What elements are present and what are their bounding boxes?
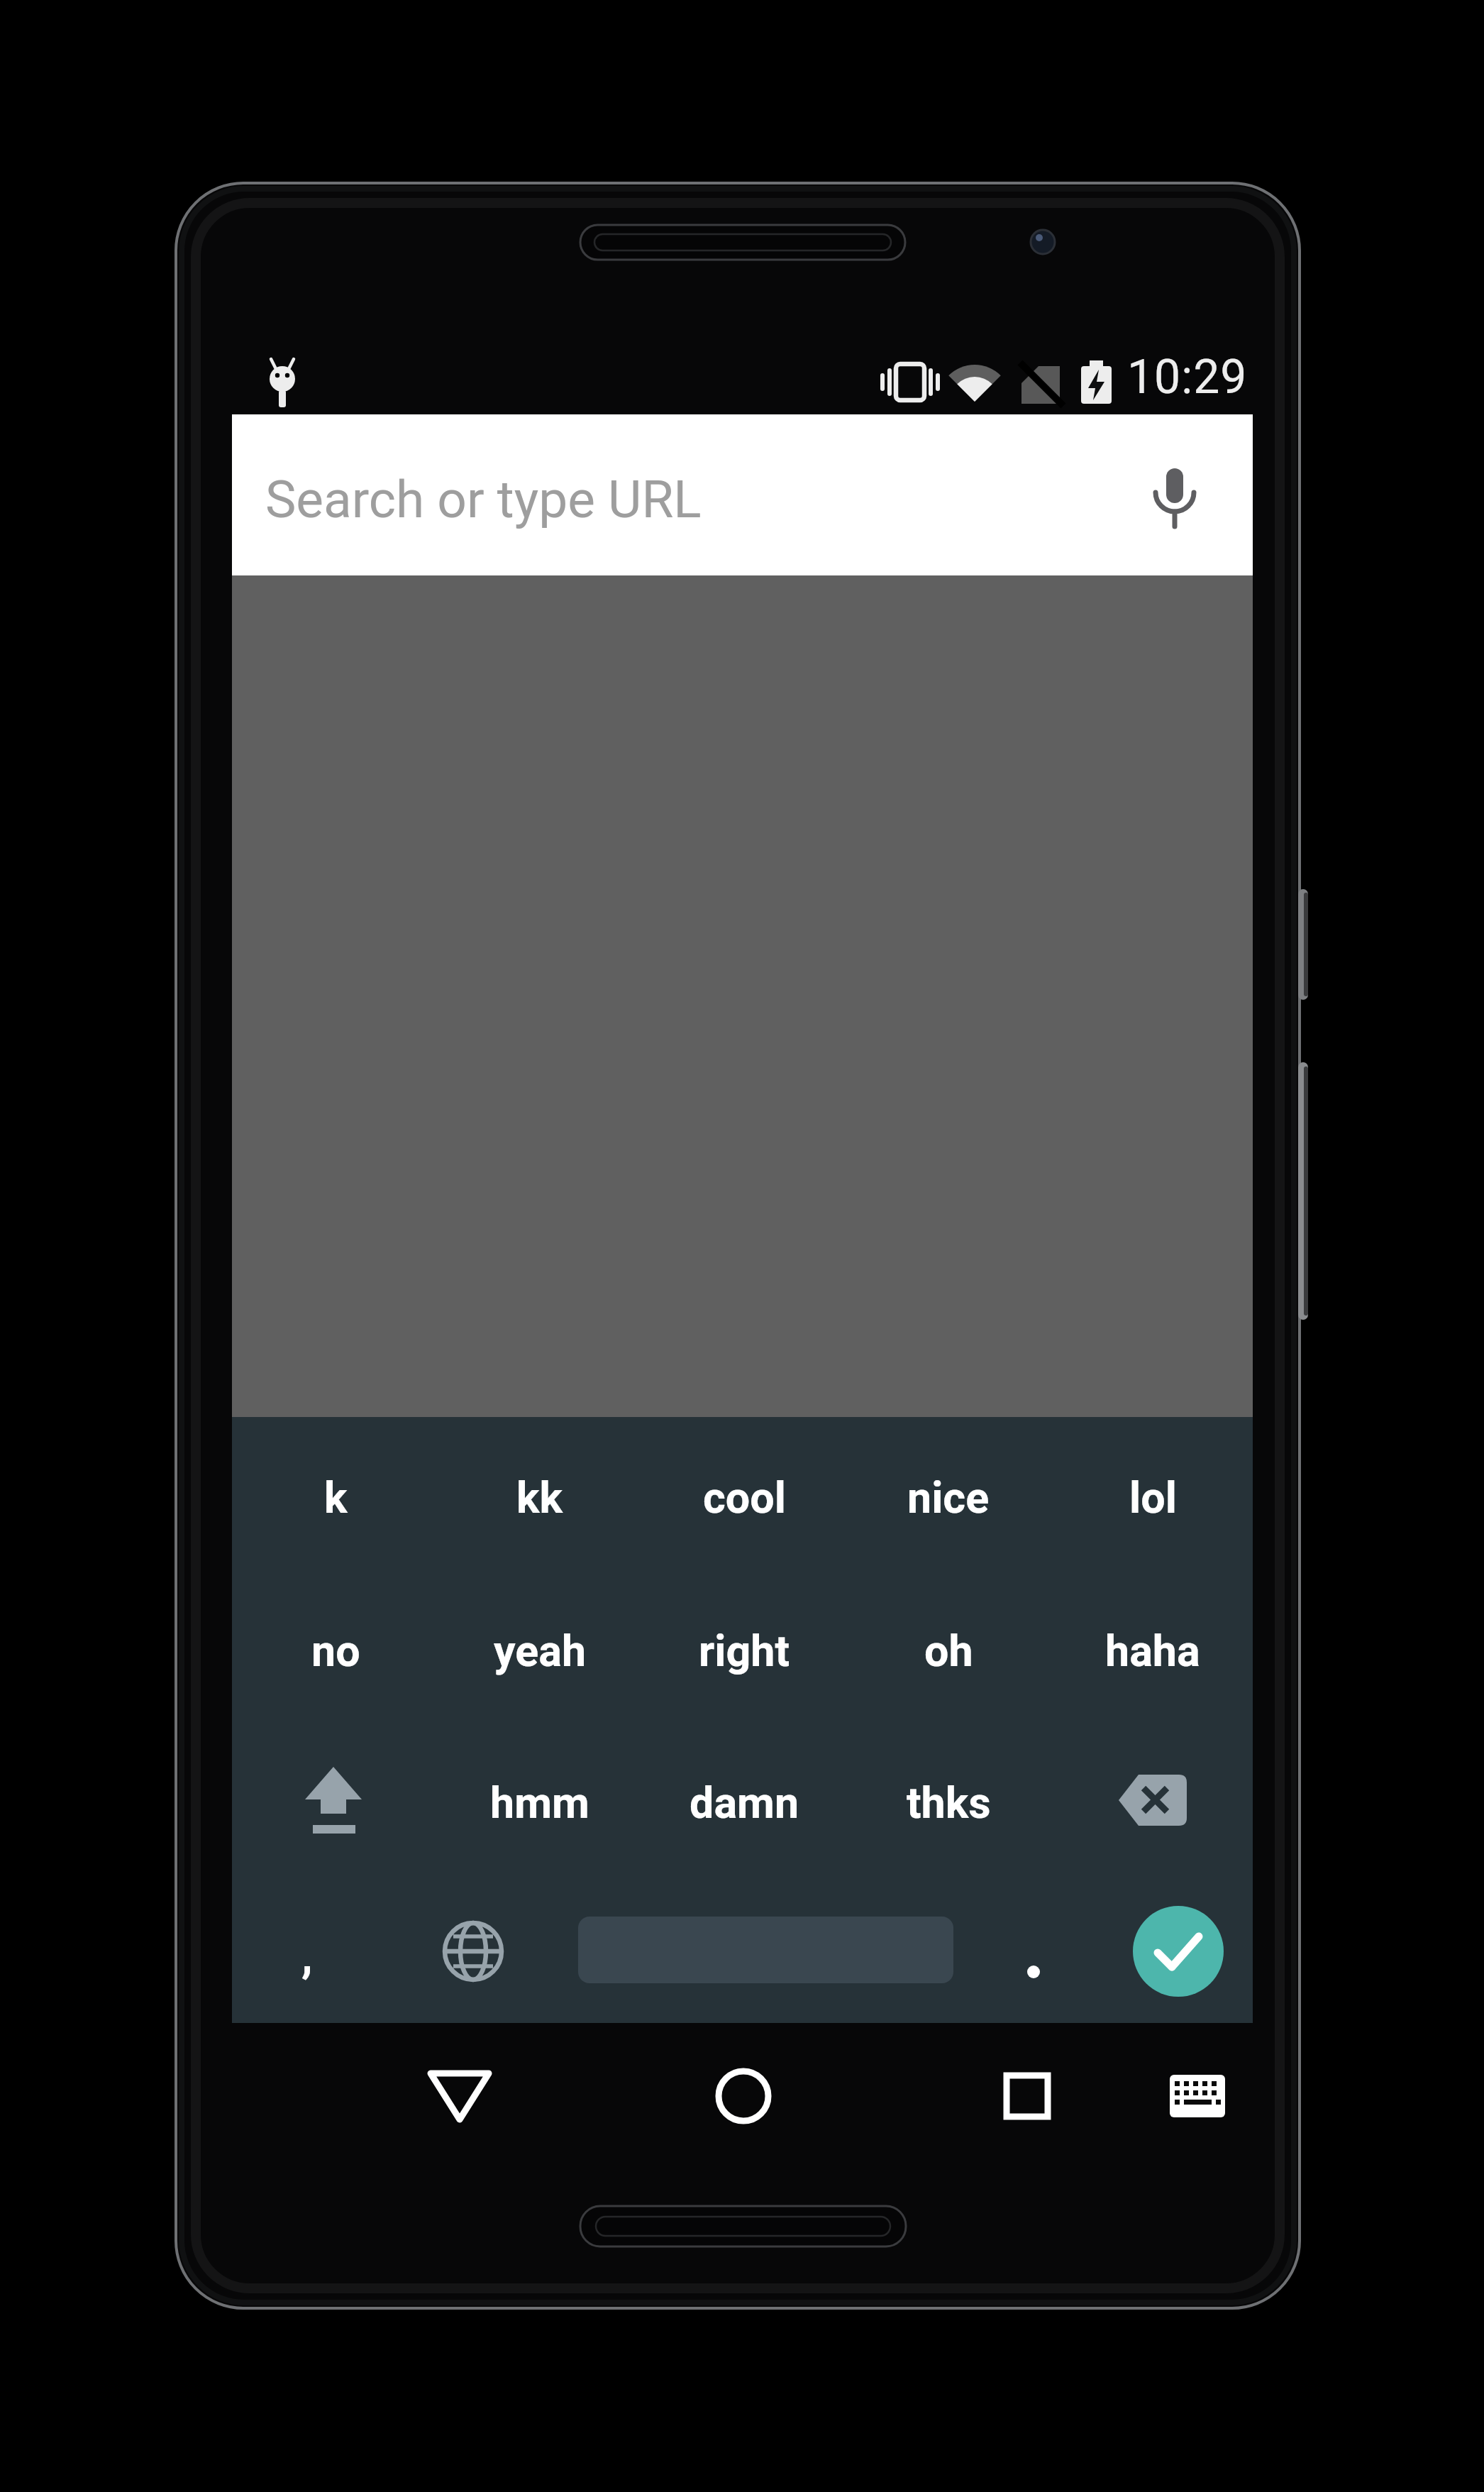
button[interactable] [262, 1743, 404, 1857]
staticText: damn [690, 1777, 799, 1828]
staticText: right [699, 1626, 790, 1676]
staticText: yeah [494, 1626, 587, 1676]
button[interactable]: hmm [441, 1746, 639, 1859]
button[interactable]: haha [1053, 1594, 1252, 1707]
staticText: haha [1105, 1626, 1200, 1676]
button[interactable] [1133, 1906, 1224, 1997]
button[interactable]: right [645, 1594, 843, 1707]
staticText: , [301, 1930, 313, 1983]
button[interactable]: k [236, 1440, 435, 1554]
staticText: 10:29 [1127, 350, 1248, 401]
staticText: nice [907, 1472, 990, 1523]
button[interactable] [396, 2032, 524, 2160]
button[interactable]: no [236, 1594, 435, 1707]
staticText: no [311, 1626, 360, 1676]
staticText: thks [907, 1777, 991, 1828]
button[interactable]: nice [849, 1440, 1048, 1554]
button[interactable]: cool [645, 1440, 843, 1554]
staticText: kk [516, 1472, 563, 1523]
button[interactable] [1081, 1743, 1223, 1856]
button[interactable]: kk [441, 1440, 639, 1554]
button[interactable] [963, 2032, 1090, 2160]
button[interactable]: thks [849, 1746, 1048, 1859]
staticText: k [324, 1472, 348, 1523]
button[interactable] [984, 1902, 1083, 2001]
button[interactable] [1134, 2032, 1261, 2160]
button[interactable]: oh [849, 1594, 1048, 1707]
button[interactable]: lol [1053, 1440, 1252, 1554]
staticText: Search or type URL [265, 469, 702, 530]
button[interactable] [416, 1895, 530, 2008]
button[interactable] [680, 2032, 807, 2160]
staticText: oh [924, 1626, 973, 1676]
button[interactable]: damn [645, 1746, 843, 1859]
staticText: lol [1129, 1472, 1177, 1523]
staticText: hmm [490, 1777, 589, 1828]
button[interactable]: Search or type URL [232, 414, 1253, 575]
staticText: cool [703, 1472, 786, 1523]
button[interactable]: , [208, 1900, 406, 2013]
button[interactable]: yeah [441, 1594, 639, 1707]
